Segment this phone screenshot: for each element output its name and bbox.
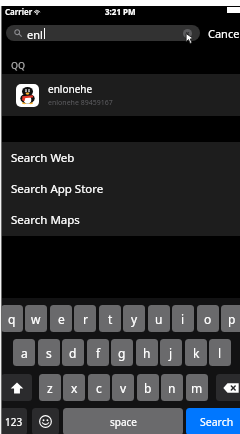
staticText: n bbox=[168, 380, 176, 396]
button[interactable]: y bbox=[123, 305, 145, 332]
staticText: k bbox=[193, 345, 200, 361]
staticText: v bbox=[120, 380, 127, 396]
staticText: space bbox=[110, 415, 137, 429]
button[interactable]: 123 bbox=[0, 408, 27, 434]
staticText: z bbox=[47, 380, 53, 396]
staticText: h bbox=[143, 345, 151, 361]
staticText: enlonehe 89459167 bbox=[48, 98, 113, 108]
staticText: Carrier bbox=[5, 6, 33, 16]
staticText: 123 bbox=[5, 415, 23, 429]
button[interactable]: Backspace bbox=[216, 374, 240, 401]
staticText: g bbox=[118, 345, 126, 361]
button[interactable]: Shift bbox=[1, 374, 32, 401]
button[interactable]: p bbox=[221, 305, 240, 332]
button[interactable]: k bbox=[185, 339, 207, 366]
staticText: enl bbox=[27, 27, 43, 41]
staticText: s bbox=[46, 345, 52, 361]
button[interactable]: q bbox=[1, 305, 23, 332]
button[interactable]: n bbox=[161, 374, 183, 401]
button[interactable]: b bbox=[137, 374, 159, 401]
button[interactable]: c bbox=[88, 374, 110, 401]
button[interactable]: h bbox=[136, 339, 158, 366]
button[interactable]: z bbox=[39, 374, 61, 401]
staticText: o bbox=[204, 311, 212, 327]
staticText: j bbox=[169, 345, 173, 361]
button[interactable]: space bbox=[63, 408, 183, 434]
staticText: t bbox=[108, 311, 113, 327]
button[interactable]: v bbox=[112, 374, 134, 401]
staticText: p bbox=[228, 311, 236, 327]
button[interactable]: Emoji bbox=[32, 408, 59, 434]
staticText: b bbox=[144, 380, 152, 396]
staticText: d bbox=[69, 345, 77, 361]
button[interactable]: Search bbox=[186, 408, 240, 434]
staticText: Search Maps bbox=[11, 212, 80, 228]
staticText: x bbox=[71, 380, 78, 396]
button[interactable]: Search Maps bbox=[0, 204, 240, 235]
button[interactable]: enlonehe bbox=[0, 74, 240, 116]
staticText: w bbox=[31, 311, 41, 327]
button[interactable]: Search App Store bbox=[0, 173, 240, 204]
button[interactable]: f bbox=[87, 339, 109, 366]
button[interactable]: w bbox=[25, 305, 47, 332]
staticText: Search bbox=[200, 415, 234, 429]
staticText: m bbox=[191, 380, 203, 396]
button[interactable]: s bbox=[38, 339, 60, 366]
button[interactable]: i bbox=[172, 305, 194, 332]
button[interactable]: j bbox=[160, 339, 182, 366]
staticText: QQ bbox=[11, 59, 26, 71]
button[interactable]: g bbox=[111, 339, 133, 366]
button[interactable]: d bbox=[62, 339, 84, 366]
staticText: u bbox=[155, 311, 163, 327]
staticText: a bbox=[21, 345, 28, 361]
button[interactable]: Clear text bbox=[183, 29, 192, 38]
staticText: Search App Store bbox=[11, 181, 104, 197]
button[interactable]: x bbox=[63, 374, 85, 401]
staticText: q bbox=[8, 311, 16, 327]
staticText: 3:21 PM bbox=[105, 6, 136, 16]
button[interactable]: u bbox=[148, 305, 170, 332]
staticText: l bbox=[218, 345, 222, 361]
button[interactable]: l bbox=[209, 339, 231, 366]
staticText: r bbox=[83, 311, 88, 327]
staticText: i bbox=[181, 311, 185, 327]
button[interactable]: e bbox=[50, 305, 72, 332]
staticText: Search Web bbox=[11, 150, 75, 166]
staticText: f bbox=[96, 345, 101, 361]
button[interactable]: Cancel bbox=[208, 26, 240, 41]
staticText: y bbox=[131, 311, 138, 327]
button[interactable]: t bbox=[99, 305, 121, 332]
staticText: enlonehe bbox=[48, 82, 93, 96]
staticText: c bbox=[96, 380, 102, 396]
button[interactable]: enl bbox=[6, 25, 200, 41]
button[interactable]: o bbox=[197, 305, 219, 332]
button[interactable]: r bbox=[74, 305, 96, 332]
staticText: e bbox=[58, 311, 65, 327]
button[interactable]: a bbox=[13, 339, 35, 366]
button[interactable]: m bbox=[186, 374, 208, 401]
button[interactable]: Search Web bbox=[0, 142, 240, 173]
